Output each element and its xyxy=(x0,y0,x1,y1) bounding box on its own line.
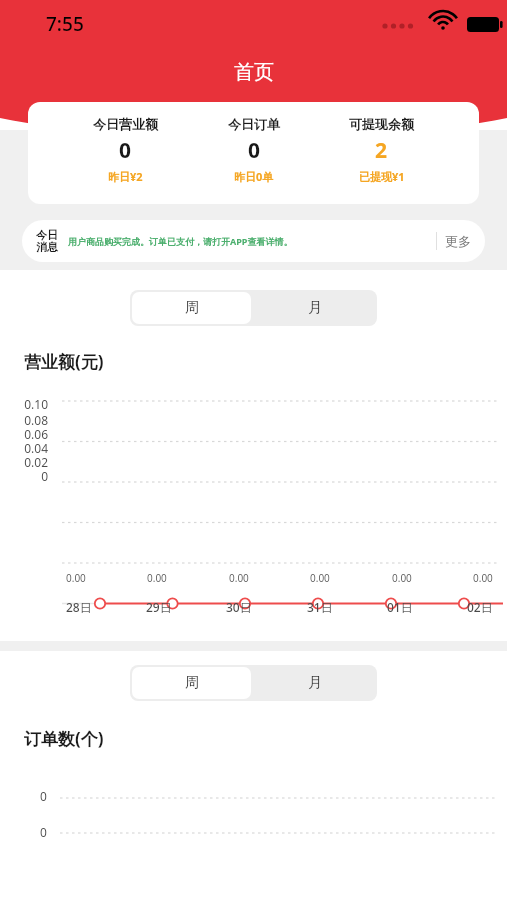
staticText: 0.00 xyxy=(310,571,330,585)
staticText: 月 xyxy=(308,299,322,317)
staticText: 昨日0单 xyxy=(234,169,274,184)
staticText: 周 xyxy=(185,299,199,317)
staticText: 0.06 xyxy=(0,426,48,440)
staticText: 02日 xyxy=(467,599,493,615)
staticText: 0.04 xyxy=(0,440,48,454)
staticText: 30日 xyxy=(226,599,252,615)
staticText: 0.00 xyxy=(473,571,493,585)
staticText: 0.00 xyxy=(392,571,412,585)
staticText: 0 xyxy=(0,468,48,482)
button[interactable]: 今日营业额 xyxy=(89,116,162,184)
button[interactable]: 今日 消息 xyxy=(22,220,485,262)
staticText: 28日 xyxy=(66,599,92,615)
staticText: 0.10 xyxy=(0,396,48,412)
button[interactable]: 周 xyxy=(132,292,251,324)
staticText: 01日 xyxy=(387,599,413,615)
staticText: 今日营业额 xyxy=(93,116,158,132)
staticText: 今日订单 xyxy=(228,116,280,132)
button[interactable]: 今日订单 xyxy=(224,116,284,184)
staticText: 7:55 xyxy=(46,11,84,37)
staticText: 可提现余额 xyxy=(349,116,414,132)
staticText: 29日 xyxy=(146,599,172,615)
staticText: 0 xyxy=(248,136,261,165)
staticText: 0.00 xyxy=(229,571,249,585)
staticText: 已提现¥1 xyxy=(359,169,405,184)
staticText: 0.02 xyxy=(0,454,48,468)
staticText: 0.08 xyxy=(0,412,48,426)
staticText: 2 xyxy=(375,136,388,165)
button[interactable]: 今日营业额 xyxy=(28,102,479,204)
button[interactable]: 月 xyxy=(253,665,377,701)
button[interactable]: 周 xyxy=(132,667,251,699)
staticText: 月 xyxy=(308,674,322,692)
staticText: 0 xyxy=(40,788,47,804)
staticText: 订单数(个) xyxy=(24,727,104,750)
staticText: 用户商品购买完成。订单已支付，请打开APP查看详情。 xyxy=(68,235,293,247)
staticText: 0.00 xyxy=(66,571,86,585)
button[interactable]: 月 xyxy=(253,290,377,326)
button[interactable]: 可提现余额 xyxy=(345,116,418,184)
staticText: 0.00 xyxy=(147,571,167,585)
staticText: 今日 消息 xyxy=(36,228,58,254)
staticText: 31日 xyxy=(307,599,333,615)
staticText: 营业额(元) xyxy=(24,350,104,373)
staticText: 0 xyxy=(40,824,47,840)
staticText: 0 xyxy=(119,136,132,165)
staticText: 更多 xyxy=(445,233,471,249)
staticText: 周 xyxy=(185,674,199,692)
staticText: 昨日¥2 xyxy=(108,169,143,184)
staticText: 首页 xyxy=(234,60,274,85)
